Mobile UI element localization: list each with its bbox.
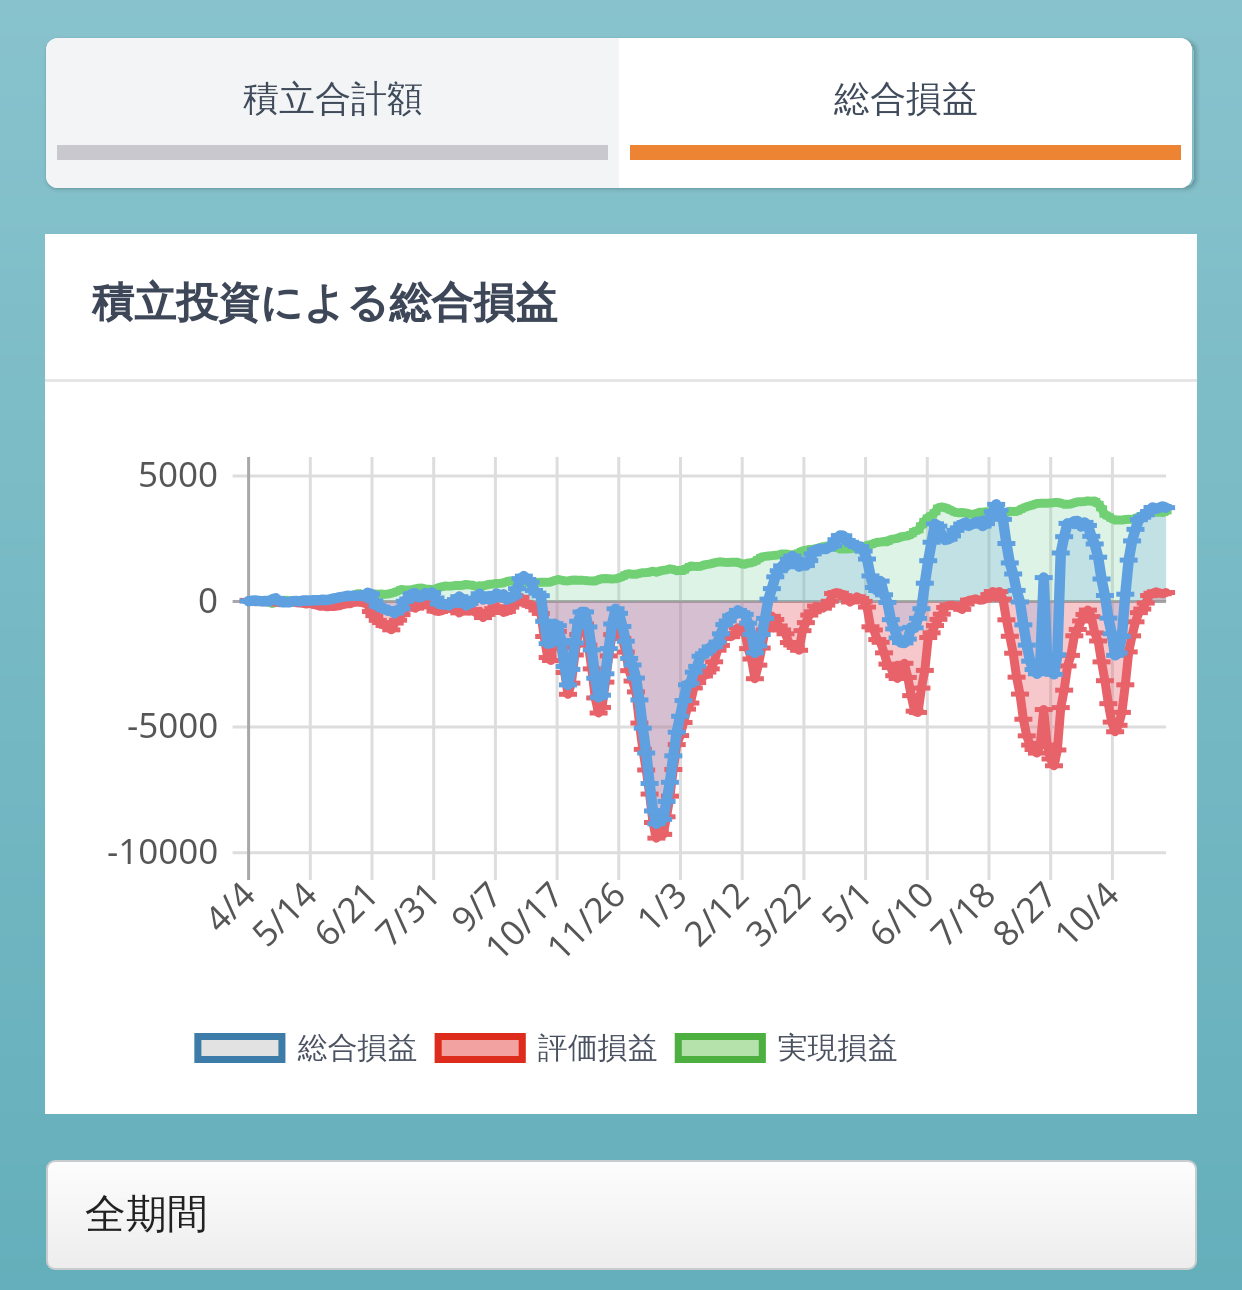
- button[interactable]: 積立合計額: [46, 38, 619, 188]
- staticText: 総合損益: [834, 76, 978, 121]
- button[interactable]: 全期間: [48, 1162, 1195, 1268]
- button[interactable]: 総合損益: [619, 38, 1192, 188]
- staticText: 全期間: [85, 1189, 208, 1241]
- button[interactable]: 積立投資による総合損益グラフ: [45, 234, 1197, 1114]
- staticText: 積立投資による総合損益: [92, 277, 557, 330]
- staticText: 積立合計額: [243, 76, 423, 121]
